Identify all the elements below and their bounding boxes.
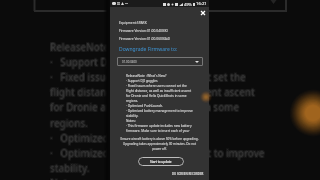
staticText: stability. [50,161,90,174]
staticText: ReleaseNote : What's New? [49,41,176,54]
staticText: ReleaseNote : What's New? [49,42,176,55]
staticText: ReleaseNote : What's New? [50,41,177,54]
staticText: · Fixed issues where users cannot set th… [50,72,246,85]
staticText: ReleaseNote : What's New? [50,40,177,53]
staticText: Notes: [49,177,80,180]
staticText: Start to update [150,160,172,164]
staticText: stability. [49,161,89,174]
staticText: 16:21 [196,1,207,7]
staticText: · Support DJI goggles [51,56,155,69]
staticText: · Fixed issues where users cannot set th… [49,71,245,84]
staticText: · Optimized battery management to improv… [126,109,193,113]
staticText: regions. [51,118,89,131]
button[interactable]: 01.00.0400 [117,57,203,66]
staticText: for Dronie and Helix QuickShots in some [49,100,239,113]
staticText: regions. [49,118,87,131]
staticText: Notes: [49,178,80,180]
staticText: ReleaseNote : What's New? [50,42,177,55]
staticText: · Optimized PushLaunch. [126,104,164,108]
staticText: regions. [49,117,87,130]
staticText: ReleaseNote : What's New? [126,74,167,78]
staticText: flight distance, as well as insufficient… [51,87,256,100]
staticText: Notes: [49,176,80,180]
staticText: for Dronie and Helix QuickShots in some [51,100,241,113]
staticText: flight distance, as well as insufficient… [51,85,256,98]
staticText: for Dronie and Helix QuickShots in some [126,94,187,98]
staticText: Firmware Version:01.00.0400(K) [119,28,168,32]
staticText: ReleaseNote : What's New? [51,40,178,53]
staticText: stability. [51,162,91,175]
staticText: flight distance, as well as insufficient… [49,85,254,98]
staticText: 01.00.0400 [122,60,137,64]
staticText: Notes: [50,177,81,180]
staticText: · Optimized PushLaunch. [51,131,173,144]
staticText: ReleaseNote : What's New? [51,42,178,55]
staticText: · Fixed issues where users cannot set th… [51,70,247,83]
staticText: · Fixed issues where users cannot set th… [126,84,187,88]
button[interactable]: Close [198,8,207,17]
staticText: stability. [50,163,90,176]
staticText: · Optimized battery management to improv… [50,146,265,159]
staticText: regions. [50,116,88,129]
staticText: for Dronie and Helix QuickShots in some [49,102,239,115]
button[interactable]: Start to update [138,157,184,166]
staticText: flight distance, as well as insufficient… [50,86,255,99]
staticText: · Optimized PushLaunch. [51,133,173,146]
staticText: · Fixed issues where users cannot set th… [49,70,245,83]
staticText: · Optimized battery management to improv… [51,146,266,159]
staticText: stability. [51,161,91,174]
staticText: for Dronie and Helix QuickShots in some [50,102,240,115]
staticText: flight distance, as well as insufficient… [49,86,254,99]
staticText: flight distance, as well as insufficient… [50,87,255,100]
staticText: regions. [50,117,88,130]
staticText: for Dronie and Helix QuickShots in some [50,100,240,113]
staticText: stability. [51,163,91,176]
staticText: · Fixed issues where users cannot set th… [51,72,247,85]
staticText: · Optimized battery management to improv… [50,148,265,161]
staticText: · Optimized battery management to improv… [51,148,266,161]
staticText: Notes: [50,176,81,180]
staticText: firmware. Make sure to insert each of yo… [126,129,190,133]
staticText: · Optimized battery management to improv… [49,148,264,161]
staticText: · Optimized battery management to improv… [49,146,264,159]
staticText: for Dronie and Helix QuickShots in some [49,101,239,114]
staticText: · This firmware update includes new batt… [126,124,192,128]
staticText: flight distance, as well as insufficient… [126,89,192,93]
staticText: Notes: [51,178,82,180]
staticText: 49% [184,2,192,7]
staticText: · Support DJI goggles [49,57,153,70]
staticText: regions. [50,118,88,131]
staticText: regions. [51,116,89,129]
staticText: stability. [126,114,139,118]
staticText: DU SCREEN RECORDER [172,172,204,176]
staticText: Firmware Version:01.00.0600(A4) [119,36,170,40]
staticText: · Optimized PushLaunch. [49,133,171,146]
staticText: · Fixed issues where users cannot set th… [50,71,246,84]
staticText: · Support DJI goggles [51,55,155,68]
staticText: · Support DJI goggles [50,56,154,69]
staticText: · Support DJI goggles [126,79,158,83]
staticText: · Support DJI goggles [49,56,153,69]
staticText: for Dronie and Helix QuickShots in some [50,101,240,114]
staticText: regions. [49,116,87,129]
staticText: · Support DJI goggles [50,55,154,68]
staticText: stability. [49,163,89,176]
staticText: · Support DJI goggles [51,57,155,70]
staticText: Notes: [50,178,81,180]
staticText: · Optimized PushLaunch. [50,132,172,145]
staticText: Ensure aircraft battery is above 50% bef… [114,137,205,151]
staticText: · Fixed issues where users cannot set th… [49,72,245,85]
staticText: flight distance, as well as insufficient… [51,86,256,99]
staticText: stability. [49,162,89,175]
staticText: stability. [50,162,90,175]
staticText: Downgrade Firmware to: [119,46,178,53]
staticText: ReleaseNote : What's New? [51,41,178,54]
staticText: for Dronie and Helix QuickShots in some [51,101,241,114]
staticText: for Dronie and Helix QuickShots in some [51,102,241,115]
staticText: · Optimized PushLaunch. [50,131,172,144]
staticText: · Optimized battery management to improv… [49,147,264,160]
staticText: · Fixed issues where users cannot set th… [50,70,246,83]
staticText: regions. [126,99,139,103]
staticText: · Support DJI goggles [49,55,153,68]
staticText: · Optimized PushLaunch. [49,132,171,145]
